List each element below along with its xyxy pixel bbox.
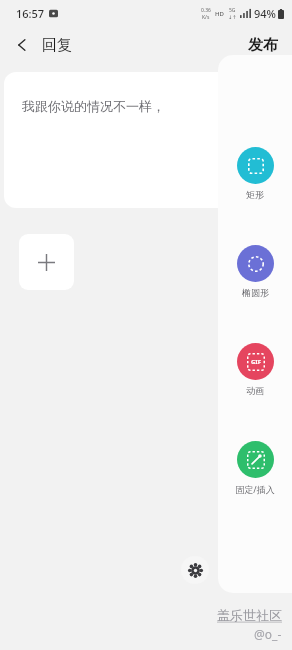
staticText: 94% [254,6,276,21]
staticText: ↓↑ [228,14,237,20]
staticText: HD [215,10,224,18]
staticText: 盖乐世社区 [217,607,282,623]
button[interactable]: 我跟你说的情况不一样， [4,72,288,208]
button[interactable]: Add image [19,234,74,290]
staticText: @o_- [254,626,282,642]
staticText: 矩形 [246,189,264,200]
staticText: 我跟你说的情况不一样， [22,98,165,114]
staticText: 5G [229,7,236,14]
button[interactable]: Settings [181,556,209,584]
button[interactable]: 固定/插入 [224,441,286,495]
staticText: 16:57 [16,6,45,21]
staticText: GIF [251,358,261,366]
staticText: 发布 [248,36,278,55]
button[interactable]: GIF [224,343,286,396]
staticText: 回复 [42,36,72,55]
staticText: 椭圆形 [242,287,269,298]
staticText: 动画 [246,385,264,396]
button[interactable]: 椭圆形 [224,245,286,298]
staticText: 0.36 [201,7,211,14]
button[interactable]: Back [0,29,84,61]
button[interactable]: 矩形 [224,147,286,200]
button[interactable]: 发布 [234,29,292,62]
staticText: K/s [202,14,210,21]
other: Back [12,35,32,55]
staticText: 固定/插入 [235,483,275,495]
